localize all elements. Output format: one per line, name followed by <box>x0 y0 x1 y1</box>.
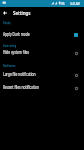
staticText: 0% <box>61 1 65 7</box>
button[interactable]: Back <box>0 8 10 18</box>
button[interactable]: Apply Dark mode <box>0 27 84 39</box>
staticText: Display <box>3 20 11 25</box>
staticText: Hide system files <box>3 48 29 55</box>
button[interactable]: Large file notification <box>0 67 84 79</box>
staticText: Large file notification <box>3 70 36 77</box>
staticText: Settings <box>13 9 31 17</box>
staticText: Recent files notification <box>3 83 40 90</box>
staticText: Apply Dark mode <box>3 30 30 37</box>
staticText: View setting <box>3 43 17 48</box>
staticText: 3:45 AM <box>70 1 80 7</box>
button[interactable]: Hide system files <box>0 45 84 57</box>
staticText: Notification <box>3 63 16 68</box>
button[interactable]: Recent files notification <box>0 80 84 92</box>
